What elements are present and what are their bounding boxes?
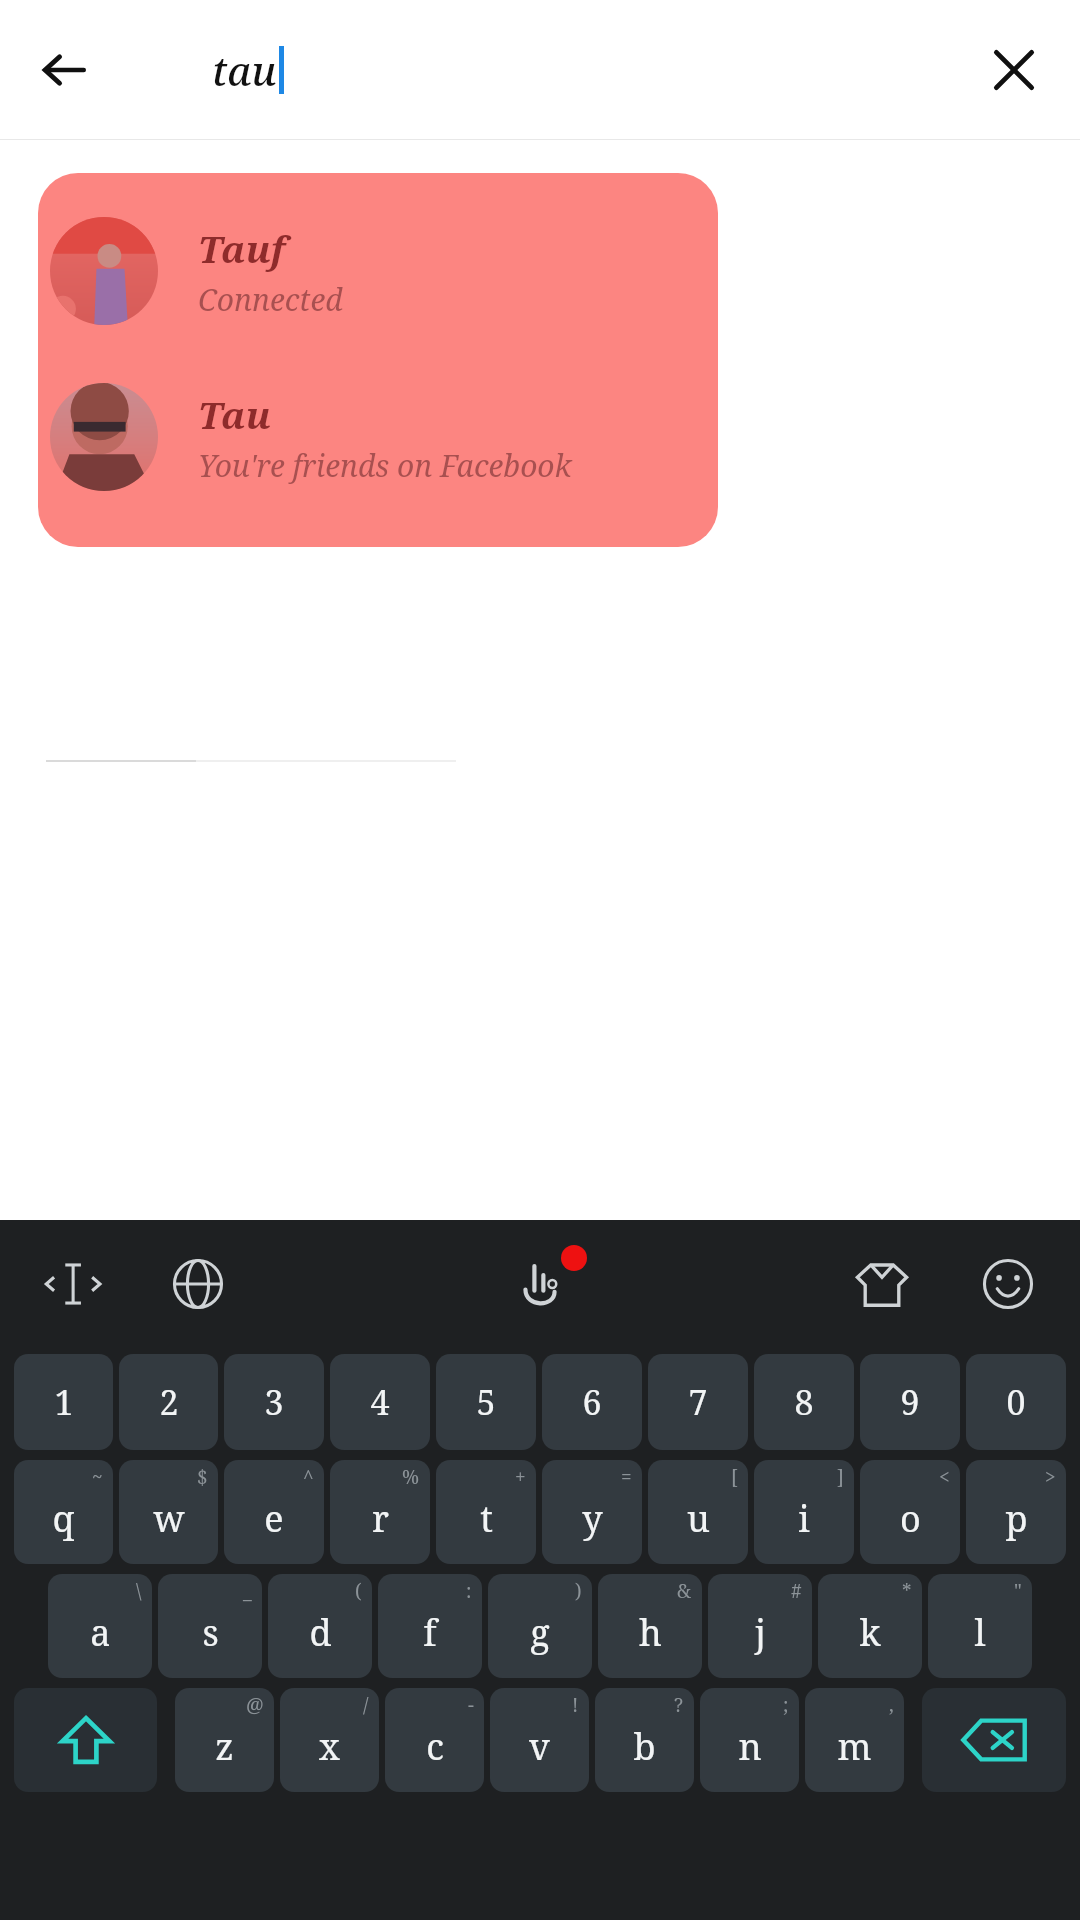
button[interactable]: = [542,1460,642,1564]
staticText: + [515,1464,526,1490]
staticText: j [755,1608,766,1657]
staticText: x [319,1722,340,1771]
staticText: @ [246,1692,264,1718]
button[interactable]: , [805,1688,904,1792]
staticText: & [677,1578,692,1604]
button[interactable]: ( [268,1574,372,1678]
staticText: > [1045,1464,1056,1490]
staticText: Tau [198,389,271,439]
button[interactable]: / [280,1688,379,1792]
button[interactable]: Cursor control [34,1246,110,1322]
button[interactable]: \ [48,1574,152,1678]
staticText: 4 [370,1379,390,1425]
button[interactable]: _ [158,1574,262,1678]
staticText: ! [572,1692,579,1718]
staticText: " [1014,1578,1022,1604]
staticText: Tauf [198,223,286,273]
staticText: v [529,1722,550,1771]
button[interactable]: Emoji [970,1246,1046,1322]
staticText: ( [355,1578,362,1604]
button[interactable]: ] [754,1460,854,1564]
staticText: c [426,1722,444,1771]
staticText: a [90,1608,111,1657]
button[interactable]: 7 [648,1354,748,1450]
staticText: _ [243,1578,252,1604]
staticText: % [402,1464,420,1490]
button[interactable]: 2 [119,1354,218,1450]
button[interactable]: 3 [224,1354,324,1450]
staticText: k [859,1608,881,1657]
staticText: 9 [900,1379,920,1425]
button[interactable]: 8 [754,1354,854,1450]
staticText: u [687,1494,710,1543]
button[interactable]: > [966,1460,1066,1564]
staticText: q [52,1494,75,1543]
staticText: - [468,1692,474,1718]
staticText: # [791,1578,802,1604]
staticText: t [480,1494,493,1543]
button[interactable]: Themes [844,1246,920,1322]
button[interactable]: 4 [330,1354,430,1450]
staticText: You're friends on Facebook [198,445,572,486]
button[interactable]: ! [490,1688,589,1792]
button[interactable]: Tauf [38,207,718,335]
button[interactable]: ^ [224,1460,324,1564]
staticText: Connected [198,279,343,320]
button[interactable]: Back [28,34,100,106]
button[interactable]: @ [175,1688,274,1792]
button[interactable]: 1 [14,1354,113,1450]
staticText: ; [783,1692,789,1718]
button[interactable]: 0 [966,1354,1066,1450]
staticText: 7 [688,1379,708,1425]
button[interactable]: " [928,1574,1032,1678]
staticText: l [974,1608,986,1657]
button[interactable]: Tau [38,373,718,501]
button[interactable]: Language [160,1246,236,1322]
staticText: h [639,1608,662,1657]
staticText: z [215,1722,234,1771]
staticText: : [466,1578,472,1604]
button[interactable]: 6 [542,1354,642,1450]
button[interactable]: # [708,1574,812,1678]
button[interactable]: Backspace [922,1688,1066,1792]
button[interactable]: : [378,1574,482,1678]
staticText: * [902,1578,912,1604]
staticText: , [889,1692,894,1718]
button[interactable]: Clear [978,34,1050,106]
staticText: f [423,1608,437,1657]
staticText: ? [674,1692,684,1718]
staticText: 8 [794,1379,814,1425]
staticText: d [309,1608,332,1657]
button[interactable]: 9 [860,1354,960,1450]
button[interactable]: % [330,1460,430,1564]
button[interactable]: ) [488,1574,592,1678]
staticText: 5 [476,1379,496,1425]
staticText: e [264,1494,284,1543]
button[interactable]: < [860,1460,960,1564]
staticText: g [530,1608,550,1657]
staticText: ~ [92,1464,103,1490]
button[interactable]: $ [119,1460,218,1564]
button[interactable]: 5 [436,1354,536,1450]
staticText: 3 [264,1379,284,1425]
staticText: 2 [159,1379,179,1425]
button[interactable]: ? [595,1688,694,1792]
staticText: m [837,1722,872,1771]
button[interactable]: & [598,1574,702,1678]
button[interactable]: ~ [14,1460,113,1564]
staticText: 6 [582,1379,602,1425]
button[interactable]: * [818,1574,922,1678]
button[interactable]: + [436,1460,536,1564]
staticText: b [633,1722,656,1771]
staticText: \ [136,1578,142,1604]
staticText: $ [197,1464,208,1490]
staticText: n [738,1722,762,1771]
button[interactable]: ; [700,1688,799,1792]
button[interactable]: [ [648,1460,748,1564]
staticText: [ [731,1464,738,1490]
button[interactable]: Shift [14,1688,157,1792]
button[interactable]: Handwriting [502,1246,578,1322]
button[interactable]: - [385,1688,484,1792]
staticText: o [900,1494,921,1543]
staticText: / [363,1692,369,1718]
